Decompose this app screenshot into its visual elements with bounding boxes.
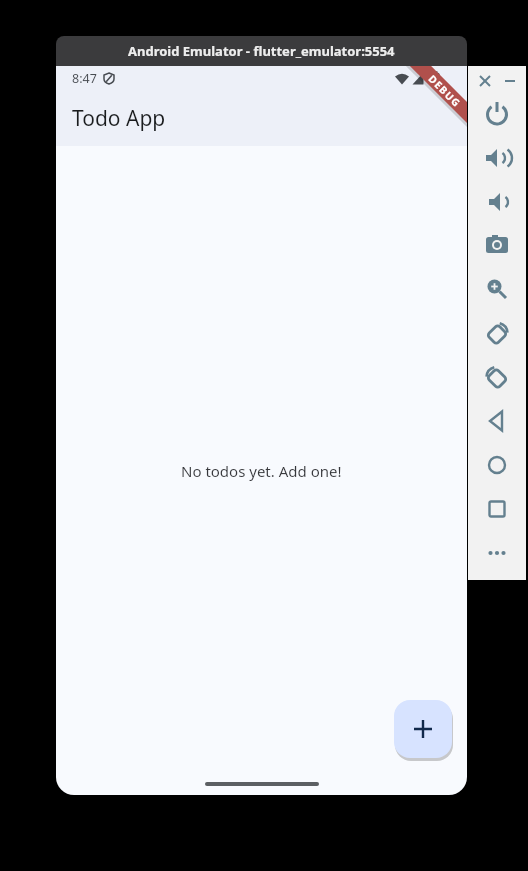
staticText: Android Emulator - flutter_emulator:5554	[128, 42, 395, 60]
button[interactable]	[484, 276, 510, 302]
button[interactable]	[478, 74, 492, 88]
staticText: 8:47	[72, 70, 97, 87]
button[interactable]	[484, 232, 510, 258]
button[interactable]	[484, 540, 510, 566]
staticText: Todo App	[72, 104, 166, 133]
button[interactable]	[484, 101, 510, 127]
button[interactable]	[484, 408, 510, 434]
staticText: DEBUG	[426, 72, 464, 111]
button[interactable]	[484, 189, 510, 215]
button[interactable]	[484, 320, 510, 346]
button[interactable]	[484, 364, 510, 390]
button[interactable]	[394, 700, 452, 758]
button[interactable]	[484, 452, 510, 478]
button[interactable]	[484, 145, 510, 171]
button[interactable]	[484, 496, 510, 522]
staticText: No todos yet. Add one!	[181, 461, 342, 481]
button[interactable]	[503, 74, 517, 88]
